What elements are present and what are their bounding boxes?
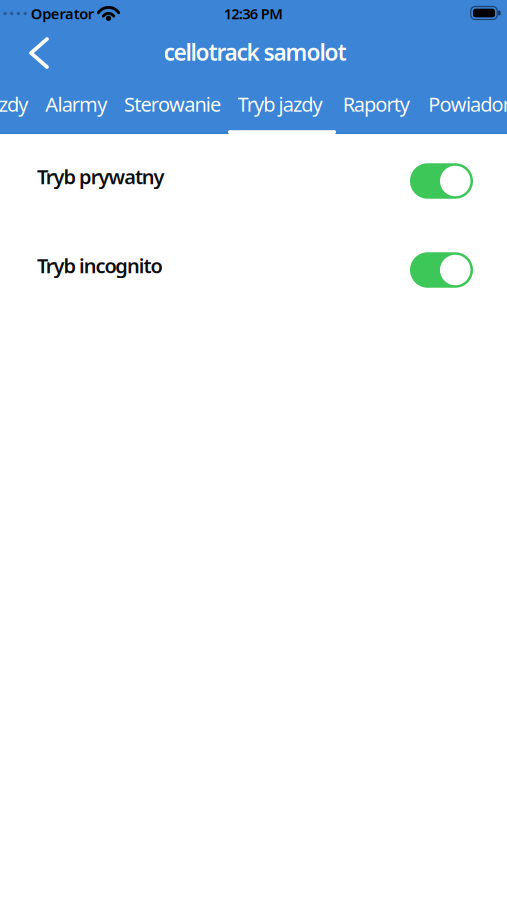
staticText: zdy	[0, 91, 28, 117]
button[interactable]: Tryb prywatny	[410, 163, 473, 199]
staticText: Raporty	[343, 91, 410, 117]
staticText: Tryb jazdy	[238, 91, 322, 117]
button[interactable]: Tryb incognito	[410, 252, 473, 288]
staticText: Sterowanie	[124, 91, 221, 117]
staticText: Alarmy	[45, 91, 107, 117]
staticText: Tryb prywatny	[37, 163, 165, 190]
button[interactable]: zdy	[0, 78, 38, 130]
staticText: cellotrack samolot	[163, 37, 346, 67]
button[interactable]: Back	[17, 31, 61, 75]
button[interactable]: Powiadomienia	[418, 78, 507, 130]
button[interactable]: Tryb jazdy	[228, 78, 332, 130]
button[interactable]: Alarmy	[35, 78, 117, 130]
staticText: 12:36 PM	[224, 4, 283, 23]
staticText: Tryb incognito	[37, 252, 162, 279]
staticText: Powiadomienia	[428, 91, 507, 117]
button[interactable]: Sterowanie	[114, 78, 231, 130]
staticText: Operator	[31, 4, 94, 23]
button[interactable]: Raporty	[333, 78, 420, 130]
